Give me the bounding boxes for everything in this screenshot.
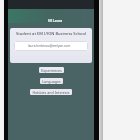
staticText: Experiences — [41, 68, 62, 73]
button[interactable]: Experiences — [39, 67, 64, 73]
staticText: HE Laura — [48, 19, 63, 23]
staticText: laura.herbreau@emlyon.com — [28, 44, 71, 48]
button[interactable]: laura.herbreau@emlyon.com — [14, 41, 88, 51]
button[interactable]: Languages — [40, 78, 63, 84]
button[interactable]: HE Laura — [8, 9, 94, 23]
staticText: Hobbies and Interests — [32, 90, 70, 95]
button[interactable]: Hobbies and Interests — [30, 89, 72, 95]
staticText: Student at EM LYON Business School — [16, 31, 86, 36]
staticText: Languages — [42, 79, 61, 84]
